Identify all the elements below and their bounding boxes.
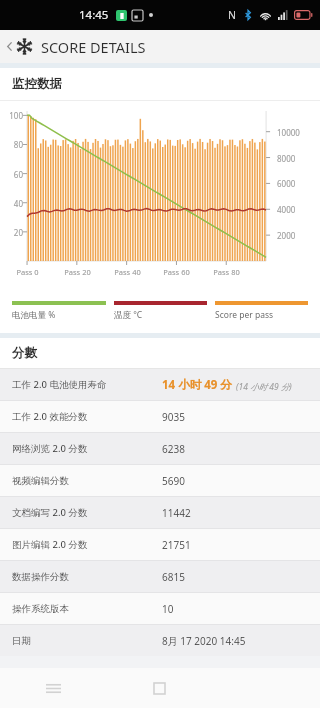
staticText: 图片编辑 2.0 分数: [12, 538, 88, 551]
button[interactable]: 网络浏览 2.0 分数: [0, 433, 320, 464]
staticText: Score per pass: [215, 309, 274, 321]
staticText: 14:45: [79, 7, 109, 23]
staticText: 5690: [162, 474, 185, 488]
staticText: 网络浏览 2.0 分数: [12, 442, 88, 455]
staticText: 工作 2.0 效能分数: [12, 410, 88, 423]
button[interactable]: 工作 2.0 效能分数: [0, 401, 320, 432]
staticText: 9035: [162, 410, 185, 424]
staticText: 4000: [277, 204, 296, 215]
staticText: N: [228, 8, 236, 22]
staticText: 80: [13, 139, 23, 150]
staticText: 10: [162, 602, 174, 616]
staticText: 14 小时 49 分: [162, 377, 232, 393]
staticText: 11442: [162, 506, 191, 520]
staticText: SCORE DETAILS: [41, 37, 146, 57]
staticText: 6238: [162, 442, 185, 456]
staticText: 分數: [12, 345, 37, 361]
button[interactable]: 操作系统版本: [0, 593, 320, 624]
staticText: 10000: [277, 127, 300, 138]
staticText: 40: [13, 198, 23, 209]
staticText: 60: [13, 169, 23, 180]
button[interactable]: 数据操作分数: [0, 561, 320, 592]
button[interactable]: 文档编写 2.0 分数: [0, 497, 320, 528]
button[interactable]: 图片编辑 2.0 分数: [0, 529, 320, 560]
button[interactable]: Home: [106, 668, 213, 708]
staticText: 电池电量 %: [12, 309, 56, 321]
staticText: 2000: [277, 230, 296, 241]
staticText: 工作 2.0 电池使用寿命: [12, 378, 107, 391]
staticText: 温度 °C: [114, 309, 143, 321]
staticText: Pass 40: [114, 267, 141, 277]
staticText: 操作系统版本: [12, 603, 69, 615]
staticText: 6000: [277, 178, 296, 189]
staticText: 文档编写 2.0 分数: [12, 506, 88, 519]
staticText: Pass 60: [163, 267, 190, 277]
staticText: 8000: [277, 153, 296, 164]
staticText: 21751: [162, 538, 191, 552]
staticText: 日期: [12, 635, 31, 647]
button[interactable]: 工作 2.0 电池使用寿命: [0, 369, 320, 400]
staticText: Pass 20: [64, 267, 91, 277]
staticText: 6815: [162, 570, 185, 584]
staticText: Pass 0: [16, 267, 39, 277]
staticText: 8月 17 2020 14:45: [162, 634, 246, 648]
button[interactable]: Recents: [0, 668, 106, 708]
button[interactable]: 日期: [0, 625, 320, 656]
other: Back: [3, 40, 16, 53]
staticText: 监控数据: [12, 76, 62, 92]
button[interactable]: 视频编辑分数: [0, 465, 320, 496]
staticText: Pass 80: [213, 267, 240, 277]
staticText: 100: [9, 110, 23, 121]
button[interactable]: Back: [0, 30, 320, 63]
staticText: 数据操作分数: [12, 571, 69, 583]
staticText: (14 小时 49 分): [236, 381, 292, 393]
staticText: 视频编辑分数: [12, 475, 69, 487]
staticText: 20: [13, 227, 23, 238]
